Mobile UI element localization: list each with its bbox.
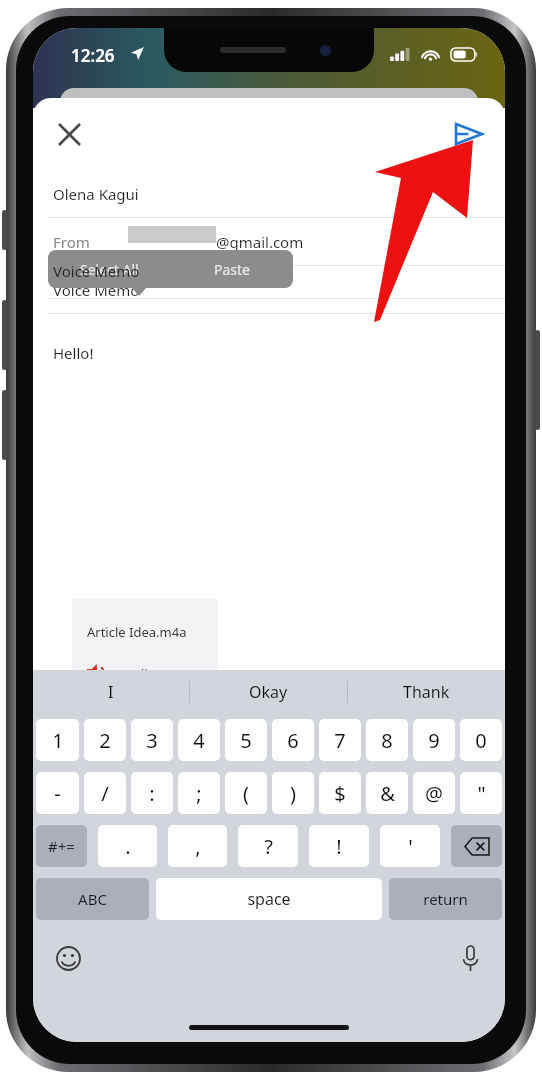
staticText: Paste [214, 260, 250, 279]
staticText: return [423, 889, 468, 909]
staticText: / [101, 780, 109, 807]
button[interactable]: 5 [225, 719, 267, 761]
button[interactable]: return [389, 878, 502, 920]
button[interactable]: . [98, 825, 157, 867]
staticText: 7 [334, 727, 346, 754]
button[interactable]: 7 [319, 719, 361, 761]
button[interactable]: 3 [131, 719, 173, 761]
staticText: ABC [78, 889, 107, 909]
button[interactable]: & [366, 772, 408, 814]
staticText: Okay [249, 681, 288, 703]
staticText: Audio [120, 665, 156, 670]
staticText: 9 [428, 727, 440, 754]
button[interactable]: 6 [272, 719, 314, 761]
button[interactable]: Olena Kagui [33, 170, 505, 218]
staticText: Voice Memo [53, 280, 140, 300]
button[interactable]: Send [443, 108, 495, 160]
button[interactable]: ( [225, 772, 267, 814]
staticText: Hello! [53, 343, 94, 363]
button[interactable]: 2 [84, 719, 126, 761]
button[interactable]: ? [238, 825, 298, 867]
staticText: ' [408, 833, 413, 860]
button[interactable]: I [33, 670, 189, 714]
button[interactable]: / [84, 772, 126, 814]
staticText: 3 [146, 727, 158, 754]
staticText: $ [334, 780, 346, 807]
button[interactable]: Emoji [49, 939, 87, 977]
button[interactable]: ABC [36, 878, 149, 920]
staticText: @ [425, 780, 443, 807]
staticText: ; [196, 780, 202, 807]
button[interactable]: ; [178, 772, 220, 814]
staticText: 8 [381, 727, 393, 754]
button[interactable]: 8 [366, 719, 408, 761]
button[interactable]: - [36, 772, 79, 814]
button[interactable]: ' [380, 825, 440, 867]
staticText: Olena Kagui [53, 184, 139, 204]
staticText: space [247, 888, 291, 910]
button[interactable]: Close [43, 108, 95, 160]
button[interactable]: Okay [190, 670, 347, 714]
button[interactable]: 4 [178, 719, 220, 761]
button[interactable]: ) [272, 772, 314, 814]
button[interactable]: : [131, 772, 173, 814]
staticText: Select All [80, 260, 139, 279]
staticText: Article Idea.m4a [87, 623, 187, 641]
button[interactable]: 0 [460, 719, 502, 761]
button[interactable]: Backspace [451, 825, 502, 867]
staticText: 1 [52, 727, 64, 754]
button[interactable]: #+= [36, 825, 87, 867]
staticText: #+= [48, 836, 75, 856]
button[interactable]: From [33, 218, 505, 266]
button[interactable]: 1 [36, 719, 79, 761]
button[interactable]: Article Idea.m4a [72, 598, 218, 670]
staticText: @gmail.com [216, 232, 304, 252]
button[interactable]: @ [413, 772, 455, 814]
staticText: & [380, 780, 395, 807]
staticText: Thank [403, 681, 450, 703]
staticText: , [195, 833, 201, 860]
staticText: 0 [475, 727, 487, 754]
staticText: " [477, 780, 486, 807]
staticText: ! [336, 833, 342, 860]
button[interactable]: Paste [170, 250, 293, 288]
staticText: I [108, 681, 114, 703]
staticText: 6 [287, 727, 299, 754]
staticText: - [54, 780, 61, 807]
staticText: From [53, 232, 90, 252]
button[interactable]: " [460, 772, 502, 814]
staticText: Voice Memo [53, 261, 140, 281]
staticText: 12:26 [71, 44, 115, 67]
staticText: 4 [193, 727, 205, 754]
staticText: ) [290, 780, 296, 807]
button[interactable]: space [156, 878, 382, 920]
button[interactable]: , [168, 825, 227, 867]
staticText: 5 [240, 727, 252, 754]
staticText: ( [243, 780, 249, 807]
staticText: . [125, 833, 131, 860]
staticText: 2 [99, 727, 111, 754]
button[interactable]: ! [309, 825, 369, 867]
button[interactable]: $ [319, 772, 361, 814]
button[interactable]: Voice Memo [33, 266, 505, 314]
button[interactable]: 9 [413, 719, 455, 761]
button[interactable]: Select All [48, 250, 170, 288]
staticText: : [149, 780, 155, 807]
button[interactable]: Dictation [451, 939, 489, 977]
button[interactable]: Thank [348, 670, 505, 714]
staticText: ? [264, 833, 273, 860]
